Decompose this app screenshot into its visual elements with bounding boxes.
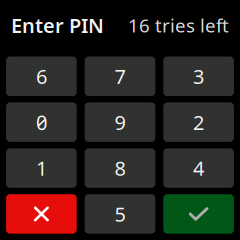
staticText: 9 — [114, 109, 125, 135]
staticText: 3 — [193, 63, 204, 90]
button[interactable]: 4 — [163, 148, 234, 188]
button[interactable]: 7 — [85, 56, 155, 96]
staticText: 16 tries left — [128, 13, 229, 38]
staticText: 4 — [193, 155, 204, 181]
staticText: 5 — [114, 201, 125, 227]
staticText: 8 — [114, 155, 125, 181]
button[interactable]: 2 — [163, 102, 234, 142]
button[interactable]: 0 — [6, 102, 77, 142]
button[interactable]: 8 — [85, 148, 155, 188]
button[interactable]: 5 — [85, 194, 155, 234]
staticText: 1 — [36, 155, 47, 181]
button[interactable]: Confirm — [163, 194, 234, 234]
button[interactable]: 3 — [163, 56, 234, 96]
staticText: 2 — [193, 109, 204, 135]
staticText: Enter PIN — [11, 12, 104, 39]
staticText: 0 — [36, 109, 47, 135]
button[interactable]: 1 — [6, 148, 77, 188]
button[interactable]: Cancel — [6, 194, 77, 234]
button[interactable]: 9 — [85, 102, 155, 142]
staticText: 6 — [36, 63, 47, 90]
button[interactable]: 6 — [6, 56, 77, 96]
staticText: 7 — [114, 63, 125, 90]
